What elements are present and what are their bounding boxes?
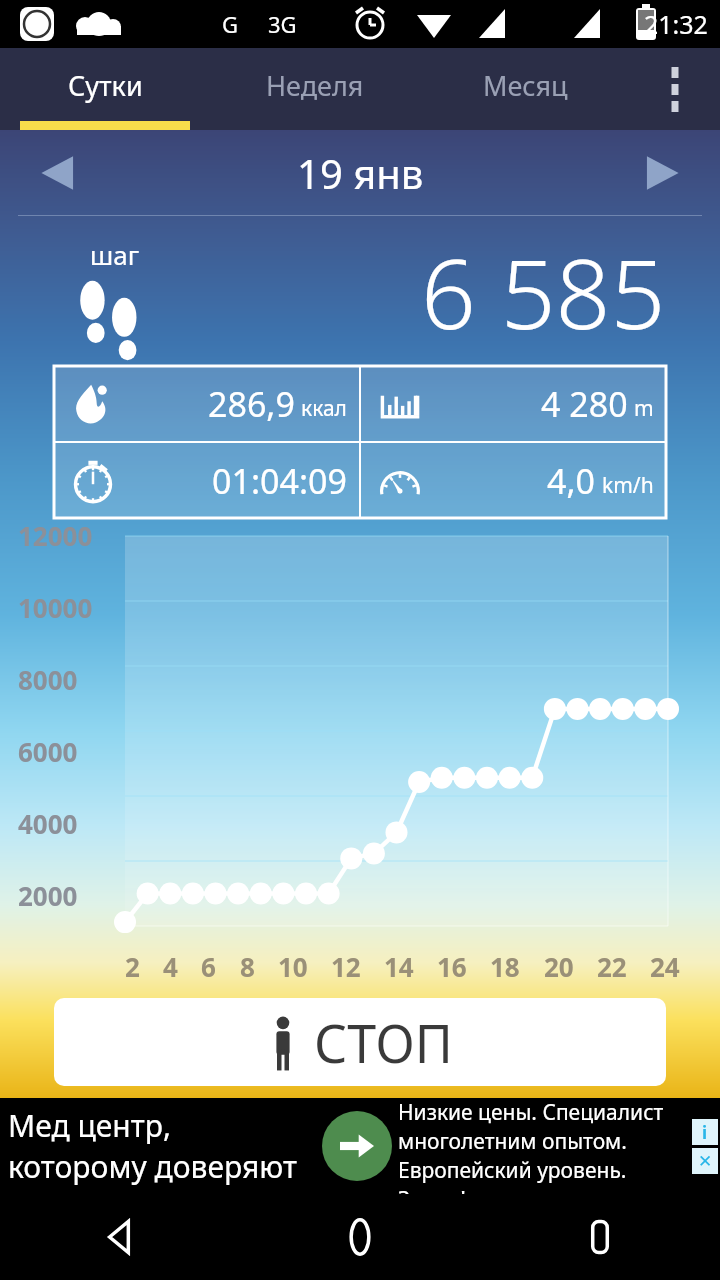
- button[interactable]: Back: [0, 1194, 240, 1280]
- staticText: 2000: [18, 878, 78, 913]
- staticText: ✕: [698, 1151, 713, 1171]
- button[interactable]: 286,9: [54, 366, 359, 441]
- staticText: km/h: [602, 471, 654, 500]
- button[interactable]: 4,0: [361, 443, 666, 518]
- staticText: Неделя: [266, 67, 364, 104]
- staticText: 286,9: [208, 381, 295, 427]
- staticText: 4 280: [541, 381, 628, 427]
- staticText: которому доверяют: [8, 1146, 297, 1187]
- button[interactable]: More options: [630, 48, 720, 130]
- staticText: 10: [278, 949, 308, 984]
- staticText: i: [702, 1121, 708, 1144]
- button[interactable]: Previous day: [24, 138, 94, 208]
- button[interactable]: Close ad: [692, 1148, 718, 1174]
- button[interactable]: Сутки: [0, 48, 210, 130]
- staticText: 2: [125, 949, 140, 984]
- button[interactable]: СТОП: [54, 998, 666, 1086]
- staticText: 8000: [18, 662, 78, 697]
- staticText: 4,0: [547, 458, 596, 504]
- staticText: m: [634, 394, 654, 423]
- staticText: ккал: [301, 394, 347, 423]
- staticText: G: [222, 9, 239, 39]
- staticText: Сутки: [68, 67, 143, 104]
- staticText: 21:32: [644, 7, 708, 41]
- button[interactable]: Ad info: [692, 1119, 718, 1145]
- staticText: СТОП: [314, 1007, 453, 1078]
- staticText: 4000: [18, 806, 78, 841]
- staticText: многолетним опытом.: [398, 1127, 627, 1156]
- staticText: 12000: [18, 518, 93, 553]
- staticText: 16: [437, 949, 467, 984]
- staticText: 24: [650, 949, 680, 984]
- staticText: 8: [240, 949, 255, 984]
- staticText: Мед центр,: [8, 1105, 171, 1146]
- button[interactable]: Home: [240, 1194, 480, 1280]
- button[interactable]: 4 280: [361, 366, 666, 441]
- staticText: шаг: [90, 237, 140, 272]
- staticText: 01:04:09: [212, 458, 347, 504]
- staticText: 3G: [268, 9, 297, 39]
- button[interactable]: Неделя: [210, 48, 420, 130]
- staticText: 19 янв: [297, 146, 424, 200]
- staticText: 14: [384, 949, 414, 984]
- staticText: 6: [201, 949, 216, 984]
- staticText: Месяц: [483, 67, 568, 104]
- button[interactable]: 01:04:09: [54, 443, 359, 518]
- staticText: 20: [544, 949, 574, 984]
- staticText: 6000: [18, 734, 78, 769]
- staticText: 6 585: [421, 226, 666, 357]
- button[interactable]: Next day: [626, 138, 696, 208]
- staticText: 22: [597, 949, 627, 984]
- button[interactable]: Мед центр,: [0, 1098, 720, 1194]
- button[interactable]: Recent apps: [480, 1194, 720, 1280]
- button[interactable]: Месяц: [420, 48, 630, 130]
- staticText: 4: [163, 949, 178, 984]
- staticText: 10000: [18, 590, 93, 625]
- staticText: Европейский уровень. Звони!: [398, 1156, 692, 1194]
- staticText: 12: [331, 949, 361, 984]
- staticText: Низкие цены. Специалист: [398, 1098, 664, 1127]
- staticText: 18: [490, 949, 520, 984]
